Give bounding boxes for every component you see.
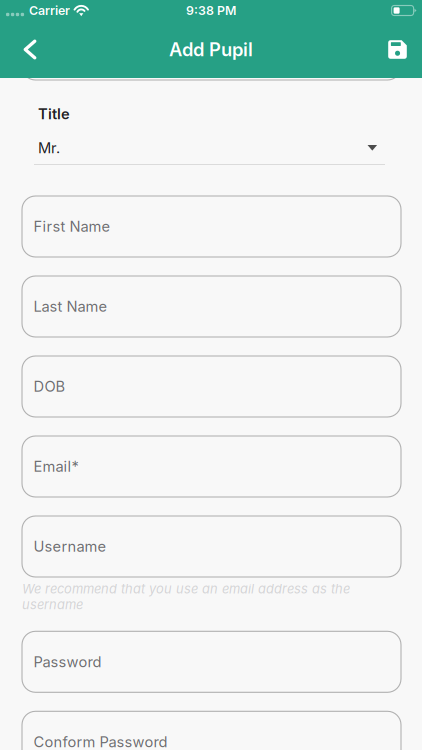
button[interactable]: Save [374, 26, 420, 72]
staticText: We recommend that you use an email addre… [22, 581, 350, 612]
staticText: Email* [33, 458, 78, 475]
staticText: Title [38, 105, 70, 123]
staticText: Password [33, 653, 101, 671]
button[interactable]: Mr. [22, 106, 401, 168]
staticText: Carrier [29, 3, 70, 18]
button[interactable]: Username [22, 516, 401, 577]
staticText: First Name [33, 218, 110, 235]
button[interactable]: Conform Password [22, 711, 401, 750]
staticText: Mr. [38, 139, 60, 157]
staticText: 9:38 PM [186, 3, 236, 18]
button[interactable]: Email* [22, 436, 401, 497]
button[interactable]: DOB [22, 356, 401, 417]
staticText: Username [33, 538, 106, 555]
staticText: DOB [33, 378, 65, 395]
staticText: Add Pupil [169, 38, 253, 61]
button[interactable]: Last Name [22, 276, 401, 337]
button[interactable]: Back [7, 26, 53, 72]
button[interactable]: First Name [22, 196, 401, 257]
button[interactable]: Password [22, 631, 401, 692]
staticText: Conform Password [33, 733, 167, 750]
staticText: Last Name [33, 298, 107, 315]
